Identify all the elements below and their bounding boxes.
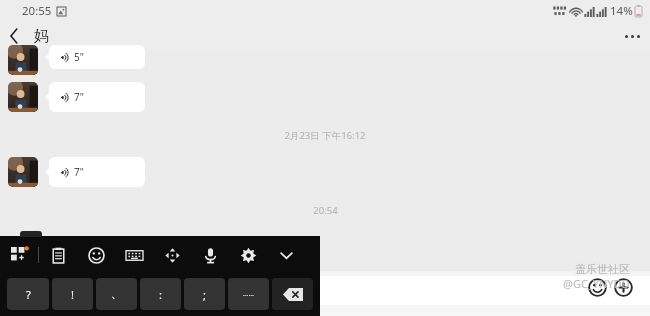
button[interactable]: Emoji: [77, 236, 115, 274]
button[interactable]: Apps: [0, 236, 38, 274]
staticText: !: [71, 287, 74, 302]
button[interactable]: Settings: [229, 236, 267, 274]
button[interactable]: Emoji: [586, 276, 608, 298]
staticText: ……: [243, 289, 255, 299]
button[interactable]: 、: [96, 278, 137, 310]
button[interactable]: Hide keyboard: [267, 236, 305, 274]
button[interactable]: ;: [184, 278, 225, 310]
staticText: @GC_YNYDD: [563, 276, 630, 291]
button[interactable]: !: [52, 278, 93, 310]
button[interactable]: ?: [7, 278, 49, 310]
button[interactable]: Avatar: [8, 82, 38, 112]
staticText: :: [159, 287, 162, 302]
staticText: 5": [74, 50, 84, 64]
button[interactable]: Voice input: [191, 236, 229, 274]
staticText: ?: [26, 287, 31, 302]
staticText: 7": [74, 165, 84, 179]
staticText: 7": [74, 90, 84, 104]
button[interactable]: Clipboard: [39, 236, 77, 274]
staticText: 14%: [610, 3, 633, 19]
button[interactable]: 5": [45, 45, 145, 69]
staticText: ;: [203, 287, 206, 302]
button[interactable]: :: [140, 278, 181, 310]
button[interactable]: More options: [614, 22, 650, 50]
button[interactable]: Resize keyboard: [20, 231, 42, 237]
staticText: 、: [111, 287, 122, 301]
staticText: 20:55: [22, 3, 52, 19]
button[interactable]: 7": [45, 157, 145, 187]
button[interactable]: More: [612, 276, 634, 298]
staticText: 20:54: [313, 204, 338, 217]
button[interactable]: ……: [228, 278, 269, 310]
button[interactable]: Back: [0, 22, 28, 50]
button[interactable]: Move cursor: [153, 236, 191, 274]
staticText: 盖乐世社区: [575, 262, 630, 276]
button[interactable]: Keyboard: [115, 236, 153, 274]
button[interactable]: 妈: [34, 27, 49, 46]
staticText: 2月23日 下午16:12: [284, 129, 366, 142]
button[interactable]: Backspace: [272, 278, 313, 310]
button[interactable]: Avatar: [8, 45, 38, 75]
button[interactable]: 7": [45, 82, 145, 112]
button[interactable]: Avatar: [8, 157, 38, 187]
